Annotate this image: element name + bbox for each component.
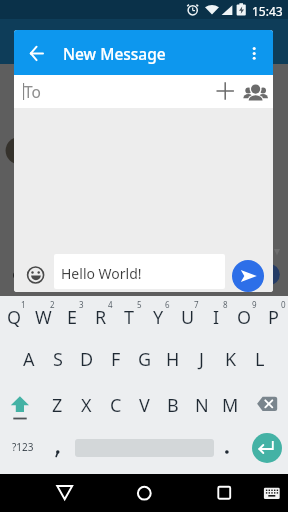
staticText: 2 (50, 299, 55, 310)
staticText: 15:43 (252, 3, 283, 19)
staticText: C (110, 393, 122, 418)
staticText: 1 (21, 299, 26, 310)
button[interactable]: N (187, 391, 216, 419)
staticText: K (225, 347, 237, 372)
staticText: L (255, 347, 265, 372)
staticText: Q (7, 305, 22, 330)
button[interactable] (232, 260, 264, 292)
staticText: To (24, 81, 41, 102)
button[interactable]: G (130, 345, 159, 373)
button[interactable]: L (245, 345, 274, 373)
button[interactable]: V (130, 391, 159, 419)
button[interactable]: X (72, 391, 101, 419)
button[interactable]: D (72, 345, 101, 373)
button[interactable] (243, 78, 269, 102)
button[interactable] (128, 477, 159, 508)
staticText: H (166, 347, 180, 372)
button[interactable] (23, 262, 49, 288)
button[interactable]: Q (0, 303, 29, 331)
staticText: Z (52, 393, 63, 418)
staticText: U (181, 305, 195, 330)
staticText: X (81, 393, 92, 418)
button[interactable]: F (101, 345, 130, 373)
staticText: A (23, 347, 35, 372)
staticText: W (35, 305, 52, 330)
staticText: 3 (79, 299, 84, 310)
staticText: V (139, 393, 150, 418)
staticText: 4 (108, 299, 113, 310)
button[interactable]: C (101, 391, 130, 419)
staticText: D (80, 347, 94, 372)
staticText: Y (153, 305, 164, 330)
staticText: R (95, 305, 107, 330)
button[interactable] (6, 390, 34, 422)
staticText: T (124, 305, 135, 330)
button[interactable]: S (43, 345, 72, 373)
staticText: G (138, 347, 152, 372)
staticText: M (222, 393, 239, 418)
button[interactable] (14, 30, 273, 75)
button[interactable] (252, 433, 282, 463)
staticText: 5 (137, 299, 142, 310)
button[interactable]: U (173, 303, 202, 331)
button[interactable] (14, 75, 273, 108)
button[interactable] (43, 440, 72, 460)
staticText: N (195, 393, 209, 418)
staticText: 9 (252, 299, 257, 310)
staticText: Hello World! (61, 264, 142, 283)
button[interactable]: R (86, 303, 115, 331)
button[interactable] (242, 39, 268, 68)
button[interactable]: H (158, 345, 187, 373)
button[interactable]: Z (43, 391, 72, 419)
staticText: 8 (223, 299, 228, 310)
button[interactable]: O (230, 303, 259, 331)
button[interactable] (23, 39, 52, 68)
button[interactable] (213, 78, 237, 102)
staticText: P (268, 305, 279, 330)
button[interactable] (209, 477, 240, 508)
staticText: ?123 (12, 440, 34, 454)
staticText: E (67, 305, 78, 330)
button[interactable]: T (115, 303, 144, 331)
button[interactable]: ?123 (5, 437, 41, 457)
button[interactable]: W (29, 303, 58, 331)
staticText: J (199, 347, 204, 372)
button[interactable]: K (216, 345, 245, 373)
button[interactable] (213, 440, 242, 460)
button[interactable]: Y (144, 303, 173, 331)
staticText: O (237, 305, 252, 330)
staticText: S (53, 347, 63, 372)
staticText: 7 (194, 299, 199, 310)
button[interactable] (254, 392, 282, 416)
button[interactable]: B (158, 391, 187, 419)
staticText: 0 (281, 299, 286, 310)
button[interactable]: M (216, 391, 245, 419)
staticText: New Message (63, 43, 166, 64)
staticText: B (167, 393, 179, 418)
button[interactable] (49, 477, 80, 508)
button[interactable] (54, 254, 225, 289)
staticText: 6 (165, 299, 170, 310)
button[interactable]: J (187, 345, 216, 373)
button[interactable]: E (58, 303, 87, 331)
button[interactable]: A (14, 345, 43, 373)
button[interactable]: I (202, 303, 231, 331)
staticText: I (213, 305, 220, 330)
button[interactable]: P (259, 303, 288, 331)
button[interactable] (260, 484, 284, 504)
staticText: F (111, 347, 121, 372)
